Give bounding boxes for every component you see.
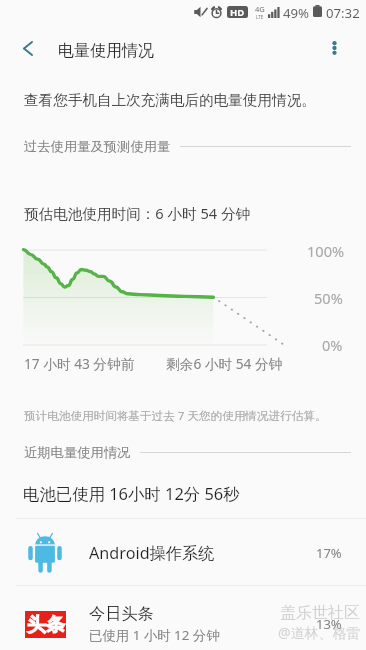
staticText: 预计电池使用时间将基于过去 7 天您的使用情况进行估算。 xyxy=(24,408,327,424)
staticText: 近期电量使用情况 xyxy=(24,444,131,461)
staticText: 预估电池使用时间：6 小时 54 分钟 xyxy=(24,203,251,223)
staticText: 已使用 1 小时 12 分钟 xyxy=(89,626,220,644)
staticText: 13% xyxy=(316,615,342,633)
staticText: @道林、格雷 xyxy=(278,623,361,642)
staticText: 头条 xyxy=(27,613,65,637)
staticText: 电量使用情况 xyxy=(58,41,154,61)
staticText: 49% xyxy=(283,4,310,22)
staticText: 17% xyxy=(316,544,342,562)
staticText: HD xyxy=(230,6,245,18)
staticText: 50% xyxy=(314,288,343,308)
staticText: 剩余6 小时 54 分钟 xyxy=(166,354,283,373)
staticText: 4G xyxy=(255,4,265,14)
staticText: 17 小时 43 分钟前 xyxy=(24,354,135,373)
staticText: 今日头条 xyxy=(89,603,154,623)
button[interactable]: More options xyxy=(310,24,358,72)
button[interactable]: Back xyxy=(4,24,52,72)
staticText: 查看您手机自上次充满电后的电量使用情况。 xyxy=(24,91,316,109)
staticText: 100% xyxy=(307,241,345,261)
staticText: 07:32 xyxy=(326,4,360,22)
button[interactable]: Android操作系统 xyxy=(0,519,366,587)
staticText: 过去使用量及预测使用量 xyxy=(24,138,171,155)
staticText: LTE xyxy=(256,14,264,20)
staticText: Android操作系统 xyxy=(89,542,215,564)
button[interactable]: 头条 xyxy=(0,586,366,650)
staticText: 电池已使用 16小时 12分 56秒 xyxy=(23,482,240,504)
staticText: 盖乐世社区 xyxy=(280,603,360,623)
staticText: 0% xyxy=(322,335,343,355)
